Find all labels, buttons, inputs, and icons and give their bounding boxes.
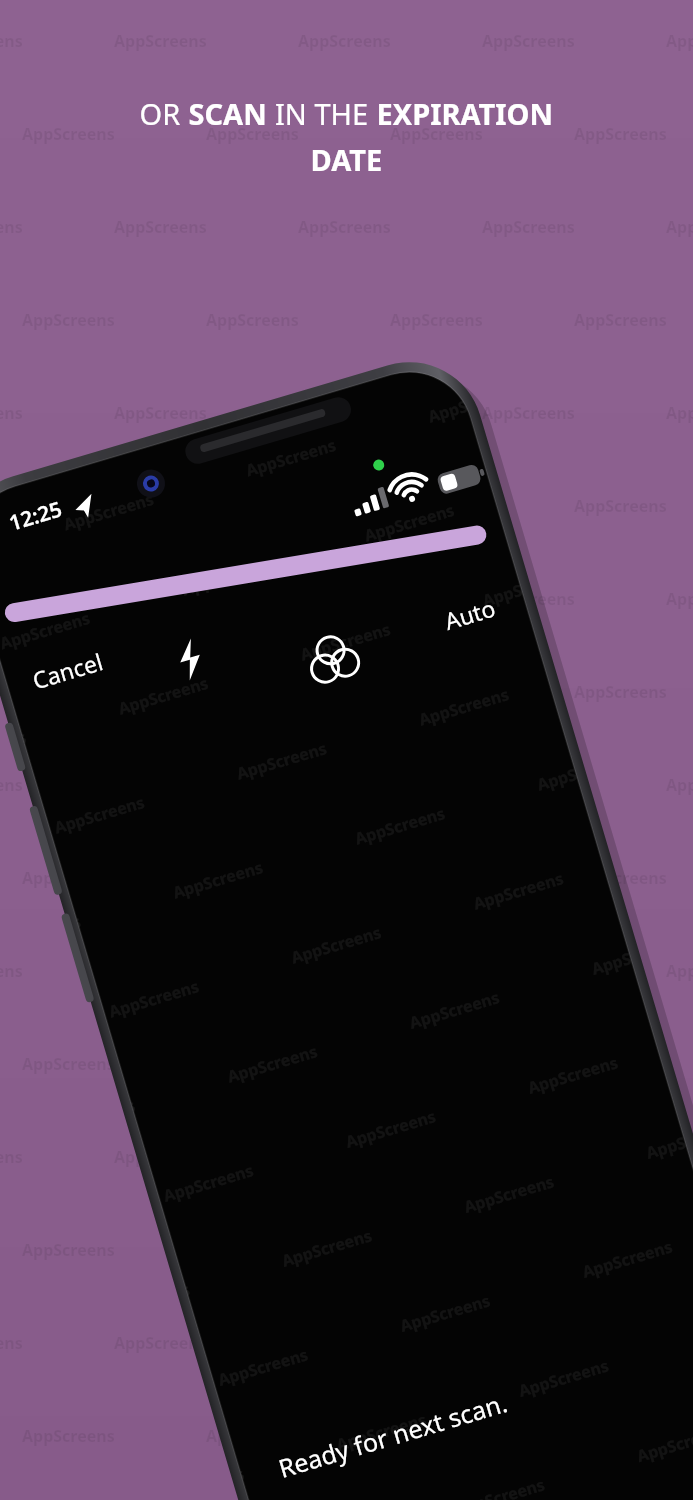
button[interactable]: Scan expiration date promo — [0, 0, 693, 1500]
